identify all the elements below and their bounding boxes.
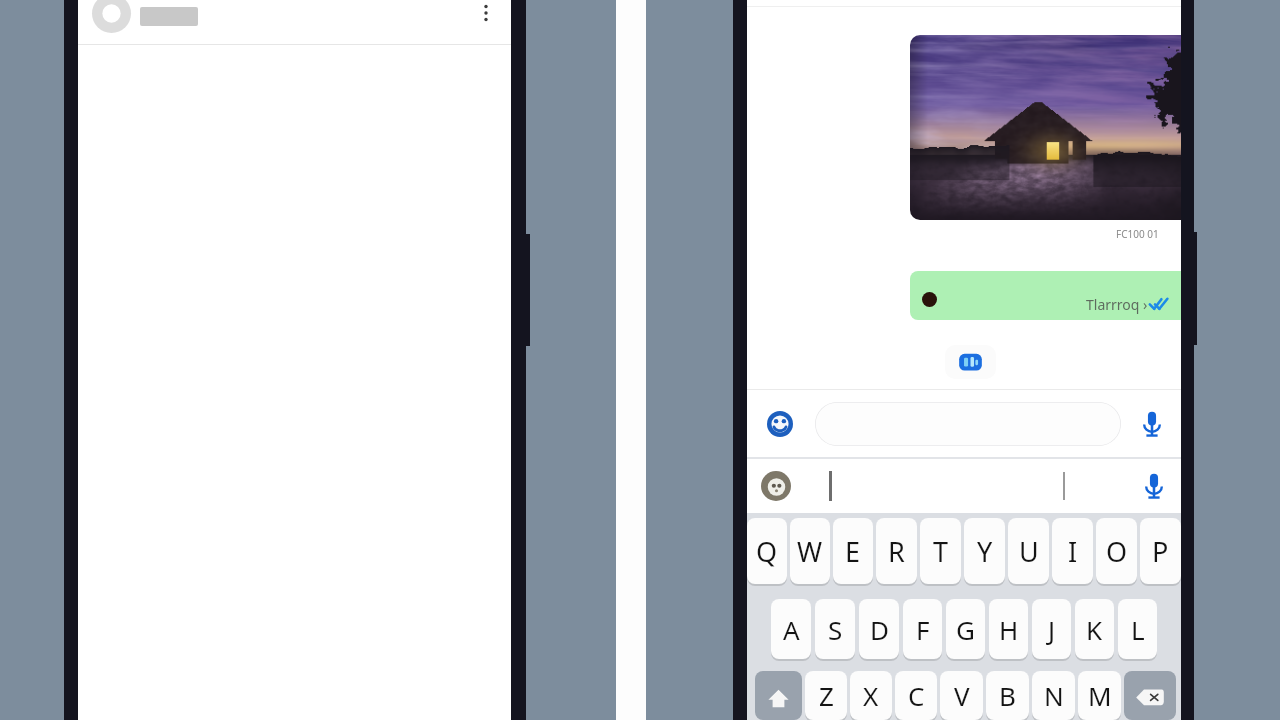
button[interactable]: P <box>1140 518 1181 584</box>
staticText: C <box>908 678 925 713</box>
staticText: N <box>1044 678 1064 713</box>
staticText: T <box>933 533 949 570</box>
staticText: R <box>888 533 905 570</box>
button[interactable]: C <box>895 671 937 720</box>
button[interactable]: S <box>815 599 855 659</box>
staticText: V <box>954 678 970 713</box>
staticText: W <box>797 533 823 570</box>
button[interactable]: D <box>859 599 899 659</box>
staticText: J <box>1048 612 1056 647</box>
button[interactable]: V <box>940 671 983 720</box>
button[interactable]: T <box>920 518 961 584</box>
button[interactable]: I <box>1052 518 1093 584</box>
button[interactable]: L <box>1118 599 1157 659</box>
button[interactable]: Keyboard settings <box>761 471 791 501</box>
button[interactable]: R <box>876 518 917 584</box>
button[interactable]: More options <box>469 0 503 30</box>
staticText: Y <box>977 533 993 570</box>
staticText: B <box>999 678 1016 713</box>
staticText: I <box>1068 533 1078 570</box>
staticText: H <box>999 612 1019 647</box>
staticText: P <box>1152 533 1169 570</box>
button[interactable]: B <box>986 671 1029 720</box>
button[interactable]: Emoji keyboard <box>763 407 797 441</box>
button[interactable]: Z <box>805 671 847 720</box>
button[interactable]: Q <box>747 518 787 584</box>
button[interactable]: X <box>850 671 892 720</box>
button[interactable]: Photo message <box>910 35 1181 220</box>
button[interactable]: U <box>1008 518 1049 584</box>
button[interactable]: K <box>1075 599 1114 659</box>
button[interactable]: E <box>833 518 873 584</box>
staticText: Tlarrroq › <box>1086 295 1148 314</box>
button[interactable]: G <box>946 599 985 659</box>
staticText: G <box>956 612 975 647</box>
button[interactable]: W <box>790 518 830 584</box>
staticText: X <box>863 678 879 713</box>
button[interactable]: A <box>771 599 811 659</box>
staticText: F <box>916 612 930 647</box>
button[interactable]: O <box>1096 518 1137 584</box>
button[interactable]: M <box>1078 671 1121 720</box>
staticText: D <box>870 612 889 647</box>
button[interactable] <box>815 402 1121 446</box>
button[interactable]: N <box>1032 671 1075 720</box>
button[interactable]: Voice message <box>1135 407 1169 441</box>
button[interactable]: J <box>1032 599 1071 659</box>
staticText: K <box>1086 612 1103 647</box>
staticText: E <box>845 533 861 570</box>
button[interactable]: Y <box>964 518 1005 584</box>
button[interactable]: H <box>989 599 1028 659</box>
button[interactable]: Sticker suggestion <box>945 345 996 379</box>
button[interactable]: Tlarrroq › <box>910 271 1181 320</box>
staticText: L <box>1131 612 1145 647</box>
image: Photo message <box>910 35 1181 220</box>
button[interactable]: More options <box>78 0 511 44</box>
staticText: A <box>783 612 800 647</box>
button[interactable]: Backspace <box>1124 671 1176 720</box>
staticText: Q <box>756 533 778 570</box>
staticText: S <box>828 612 843 647</box>
staticText: Z <box>819 678 834 713</box>
staticText: O <box>1106 533 1128 570</box>
button[interactable]: Shift <box>755 671 802 720</box>
staticText: FC100 01 <box>1116 227 1159 241</box>
staticText: M <box>1088 678 1112 713</box>
button[interactable]: F <box>903 599 942 659</box>
button[interactable]: Voice input <box>1137 469 1171 503</box>
staticText: U <box>1019 533 1039 570</box>
